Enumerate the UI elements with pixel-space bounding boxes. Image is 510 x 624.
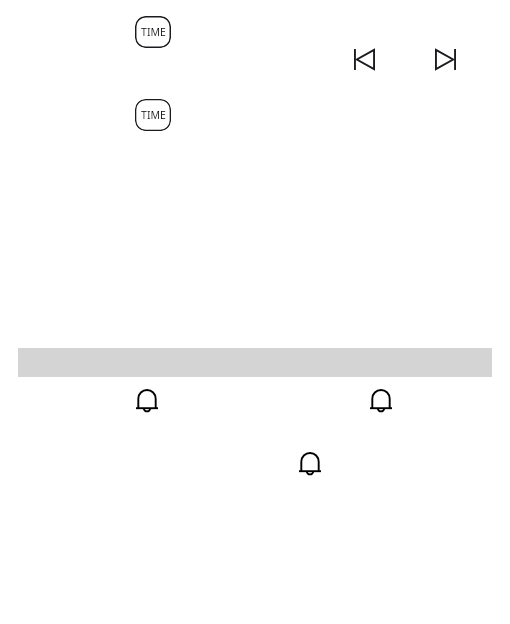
button[interactable]: TIME bbox=[135, 16, 171, 48]
button[interactable]: Notifications bbox=[299, 452, 321, 475]
button[interactable]: TIME bbox=[135, 99, 171, 131]
button[interactable]: Notifications bbox=[370, 389, 392, 412]
staticText: TIME bbox=[141, 108, 166, 122]
button[interactable]: Skip next bbox=[435, 49, 456, 70]
staticText: TIME bbox=[141, 25, 166, 39]
button[interactable]: Skip previous bbox=[354, 49, 375, 70]
button[interactable]: Notifications bbox=[136, 389, 158, 412]
